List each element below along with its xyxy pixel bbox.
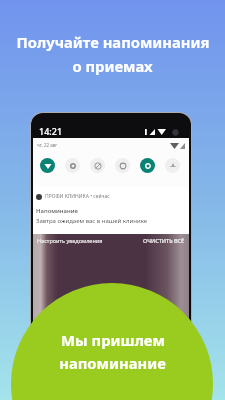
staticText: чт, 22 авг [37,142,58,148]
button[interactable]: ОЧИСТИТЬ ВСЁ [143,237,185,244]
button[interactable]: Airplane mode [165,158,180,173]
button[interactable]: Настроить уведомления [37,237,103,244]
button[interactable]: Wi-Fi [40,158,55,173]
button[interactable]: Auto-rotate [90,158,105,173]
staticText: Напоминание [36,207,78,215]
staticText: Получайте напоминания [16,32,210,52]
button[interactable]: Bluetooth [65,158,80,173]
staticText: Мы пришлем [61,330,165,350]
staticText: Завтра ожидаем вас в нашей клинике [36,217,148,225]
button[interactable]: Flashlight [140,158,155,173]
button[interactable]: Battery saver [115,158,130,173]
staticText: напоминание [59,353,166,373]
staticText: 14:21 [39,125,63,137]
staticText: о приемах [72,56,153,76]
staticText: ПРОФИ КЛИНИКА • сейчас [45,193,110,200]
